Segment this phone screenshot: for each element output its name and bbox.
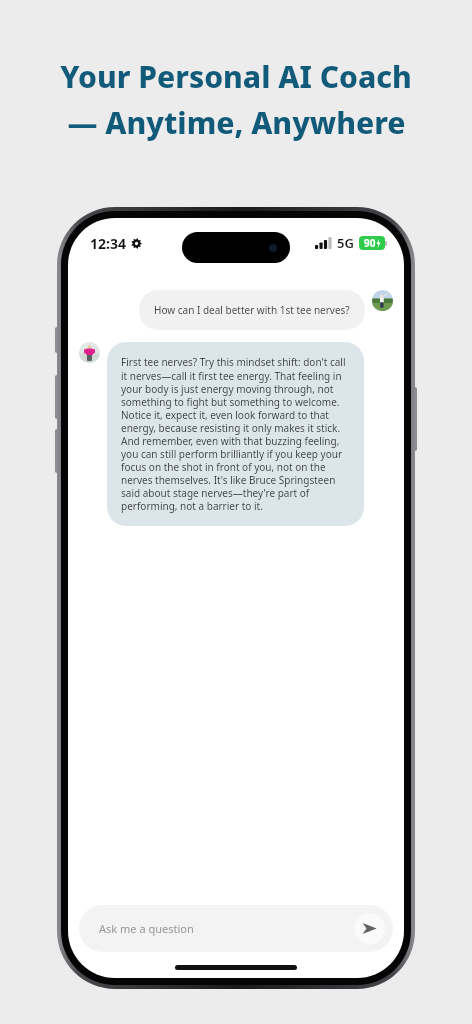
staticText: Your Personal AI Coach — [60, 56, 412, 97]
staticText: 12:34 — [90, 234, 126, 253]
staticText: Ask me a question — [99, 921, 354, 936]
staticText: 90 — [364, 236, 376, 250]
button[interactable]: How can I deal better with 1st tee nerve… — [139, 290, 365, 330]
staticText: — Anytime, Anywhere — [67, 102, 406, 143]
staticText: How can I deal better with 1st tee nerve… — [154, 303, 350, 317]
staticText: 5G — [337, 234, 354, 252]
staticText: First tee nerves? Try this mindset shift… — [121, 355, 350, 513]
other: Coach avatar — [79, 342, 100, 363]
button[interactable]: First tee nerves? Try this mindset shift… — [107, 342, 364, 526]
other: Your profile photo — [372, 290, 393, 311]
button[interactable]: Ask me a question — [79, 905, 393, 952]
button[interactable]: Send — [354, 913, 385, 944]
